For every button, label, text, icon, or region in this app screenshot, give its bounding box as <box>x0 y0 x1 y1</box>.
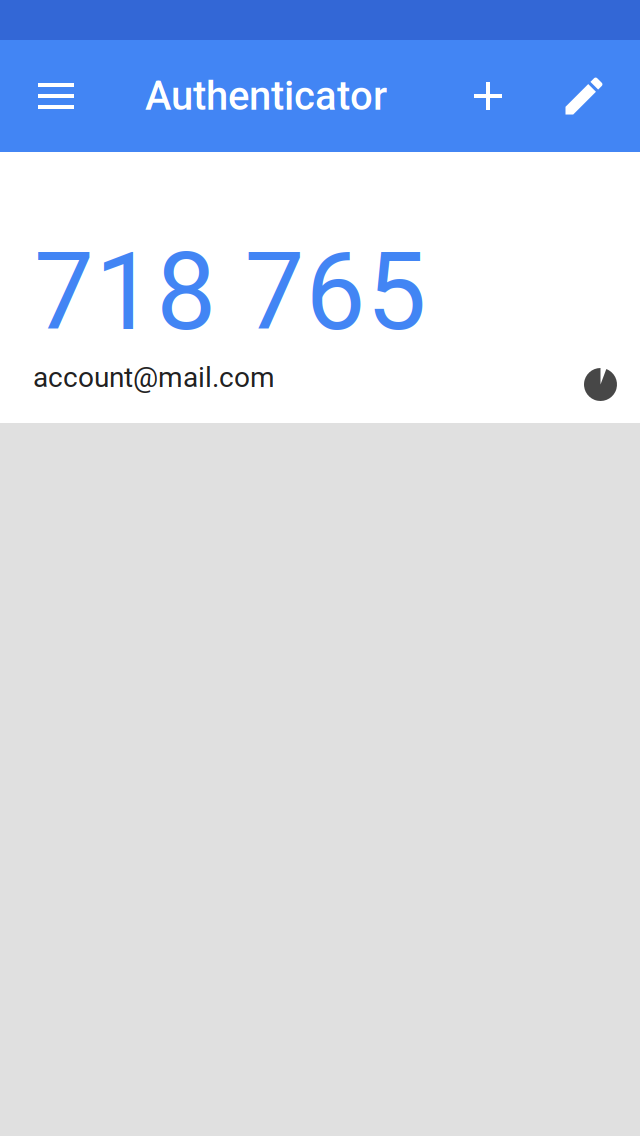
button[interactable]: Add account <box>440 40 536 152</box>
button[interactable]: Open navigation menu <box>0 40 112 152</box>
button[interactable]: Edit accounts <box>536 40 632 152</box>
button[interactable]: account@mail.com, code 718 765 <box>0 152 640 423</box>
staticText: account@mail.com <box>33 361 275 394</box>
staticText: Authenticator <box>145 73 387 119</box>
staticText: 718 765 <box>34 230 427 355</box>
